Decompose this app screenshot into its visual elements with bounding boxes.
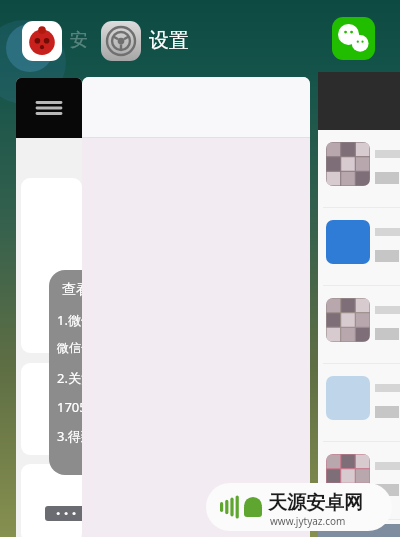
staticText: 3.得到 [57, 427, 82, 445]
staticText: 微信号 [57, 340, 82, 355]
staticText: 安 [70, 29, 88, 52]
staticText: www.jytyaz.com [270, 514, 346, 528]
button[interactable]: AnTuTu Benchmark [22, 21, 62, 61]
staticText: 设置 [149, 28, 189, 53]
staticText: 17052 [57, 398, 82, 416]
staticText: 1.微信 [57, 311, 82, 329]
button[interactable]: WeChat [332, 17, 375, 60]
button[interactable]: Settings [101, 21, 141, 61]
button[interactable] [82, 77, 310, 537]
button[interactable]: 查看 [16, 78, 82, 537]
staticText: 天源安卓网 [268, 491, 363, 515]
staticText: 查看 [62, 281, 82, 299]
button[interactable] [318, 72, 400, 537]
staticText: 2.关注 [57, 369, 82, 387]
